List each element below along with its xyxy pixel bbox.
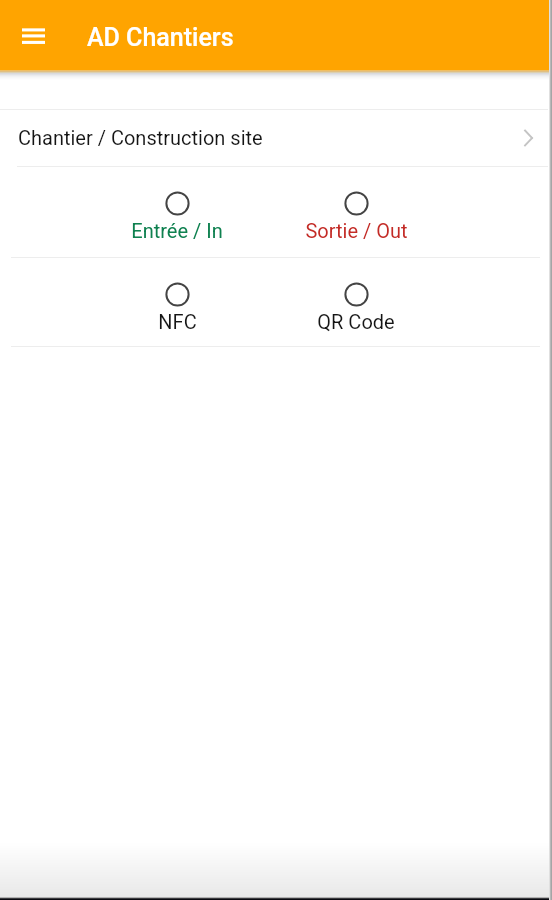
button[interactable]: Entrée / In xyxy=(0,167,276,257)
staticText: Entrée / In xyxy=(131,219,223,242)
staticText: AD Chantiers xyxy=(87,23,234,52)
staticText: Chantier / Construction site xyxy=(18,126,263,149)
staticText: NFC xyxy=(158,310,197,333)
staticText: QR Code xyxy=(317,310,395,333)
button[interactable]: QR Code xyxy=(276,258,552,346)
button[interactable]: Open navigation menu xyxy=(9,11,57,59)
button[interactable]: NFC xyxy=(0,258,276,346)
staticText: Sortie / Out xyxy=(305,219,408,242)
button[interactable]: Chantier / Construction site xyxy=(0,110,552,166)
button[interactable]: Sortie / Out xyxy=(276,167,552,257)
